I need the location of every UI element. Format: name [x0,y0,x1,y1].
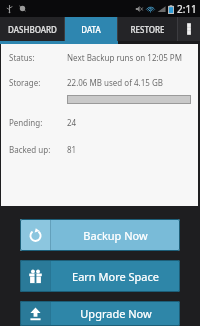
button[interactable]: Earn More Space [20,260,180,292]
button[interactable]: RESTORE [118,17,177,41]
staticText: Backup Now [83,228,148,243]
staticText: 22.06 MB used of 4.15 GB [67,77,163,88]
button[interactable]: More options [178,17,200,41]
staticText: DATA [81,24,101,35]
button[interactable]: Upgrade Now [20,301,180,326]
staticText: Upgrade Now [80,306,152,321]
staticText: Pending: [9,117,43,128]
button[interactable]: DATA [65,17,117,41]
staticText: DASHBOARD [8,24,57,35]
staticText: Earn More Space [72,269,159,284]
button[interactable]: DASHBOARD [0,17,64,41]
staticText: Backed up: [9,144,51,155]
staticText: Storage: [9,77,41,88]
staticText: Status: [9,52,35,63]
staticText: RESTORE [130,24,165,35]
button[interactable]: Backup Now [20,219,180,251]
staticText: 24 [67,117,77,128]
staticText: 81 [67,144,77,155]
staticText: Next Backup runs on 12:05 PM [67,52,182,63]
staticText: 2:11 [177,2,197,16]
